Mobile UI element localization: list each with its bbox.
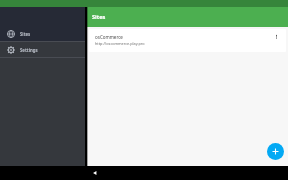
staticText: Settings (20, 47, 38, 53)
button[interactable]: Add site (267, 143, 284, 160)
staticText: Sites (92, 13, 106, 21)
staticText: Sites (20, 31, 31, 37)
button[interactable]: Sites (0, 26, 85, 41)
staticText: osCommerce (95, 34, 123, 40)
button[interactable]: Back (88, 166, 102, 180)
button[interactable]: More options (270, 31, 282, 43)
button[interactable]: osCommerce (89, 29, 286, 52)
button[interactable]: Settings (0, 42, 85, 57)
staticText: http://oscommerce.play.pro (95, 41, 145, 46)
